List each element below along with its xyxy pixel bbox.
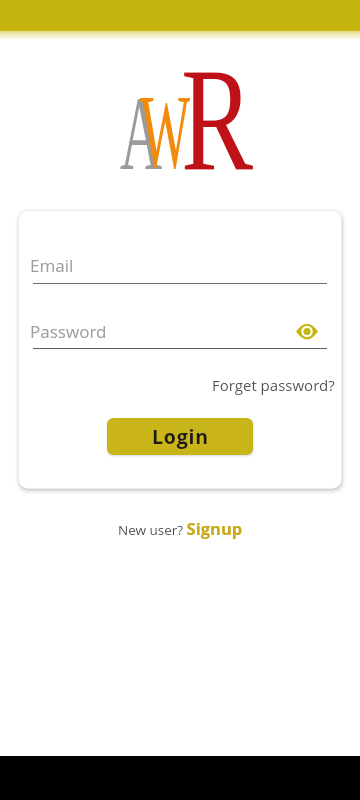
staticText: Login <box>152 423 209 450</box>
button[interactable] <box>296 324 318 339</box>
staticText: Email <box>30 254 74 277</box>
button[interactable] <box>30 248 327 285</box>
staticText: R <box>181 38 253 202</box>
button[interactable] <box>30 313 300 350</box>
staticText: W <box>140 73 190 190</box>
button[interactable]: New user? Signup <box>118 517 243 539</box>
staticText: A <box>120 75 162 192</box>
staticText: Password <box>30 320 107 343</box>
button[interactable]: Forget password? <box>212 375 335 395</box>
button[interactable]: Login <box>107 418 253 455</box>
